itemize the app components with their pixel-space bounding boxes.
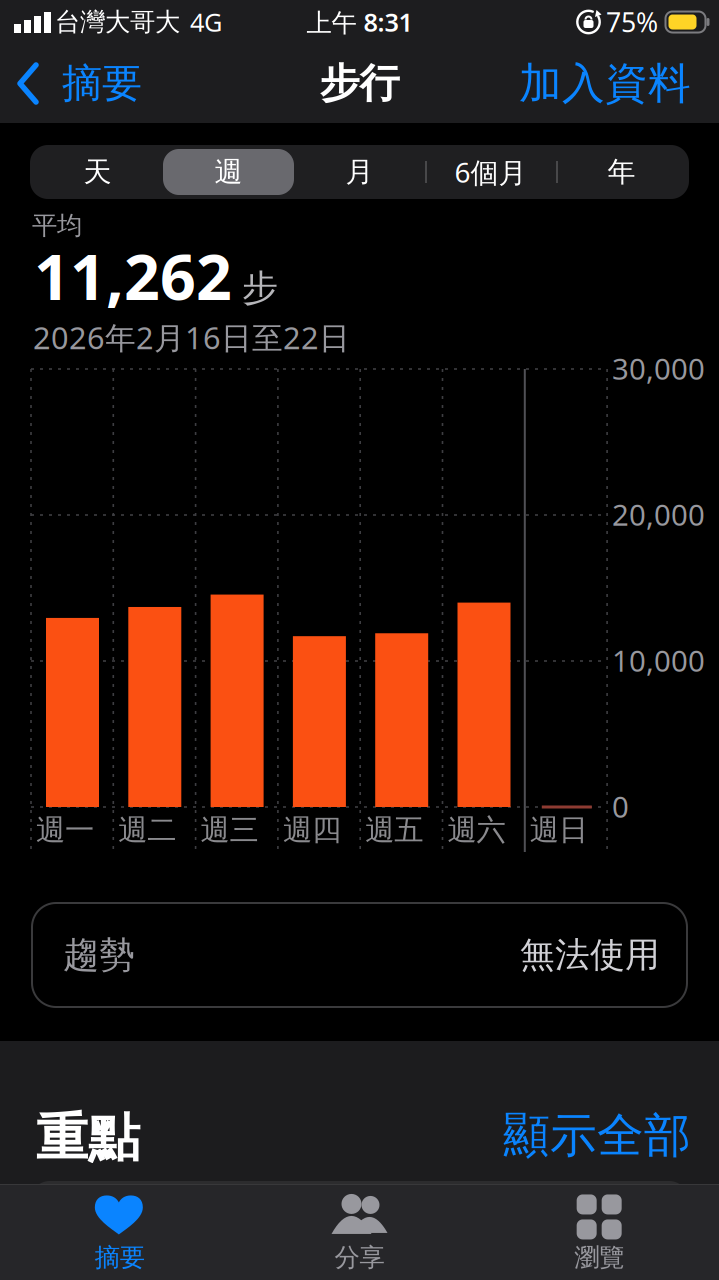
button[interactable]: 月 xyxy=(294,145,425,199)
staticText: 2026年2月16日至22日 xyxy=(33,317,350,358)
staticText: 摘要 xyxy=(62,59,142,108)
staticText: 週四 xyxy=(283,812,341,848)
staticText: 趨勢 xyxy=(63,933,135,977)
button[interactable]: 年 xyxy=(556,145,687,199)
staticText: 年 xyxy=(607,155,635,189)
staticText: 上午 8:31 xyxy=(306,5,412,39)
staticText: 20,000 xyxy=(612,495,705,534)
staticText: 週六 xyxy=(447,812,505,848)
staticText: 30,000 xyxy=(612,349,705,388)
staticText: 步行 xyxy=(319,59,399,108)
button[interactable]: 6個月 xyxy=(425,145,556,199)
button[interactable]: 瀏覽 xyxy=(479,1192,719,1276)
button[interactable]: 顯示全部 xyxy=(503,1107,691,1164)
staticText: 平均 xyxy=(32,210,82,241)
staticText: 瀏覽 xyxy=(574,1242,624,1273)
button[interactable]: 週 xyxy=(163,145,294,199)
button[interactable]: 天 xyxy=(32,145,163,199)
staticText: 4G xyxy=(190,5,222,39)
staticText: 週一 xyxy=(36,812,94,848)
staticText: 顯示全部 xyxy=(503,1107,691,1164)
staticText: 週二 xyxy=(118,812,176,848)
staticText: 步 xyxy=(242,266,278,310)
button[interactable]: 加入資料 xyxy=(519,57,719,110)
staticText: 週三 xyxy=(201,812,259,848)
staticText: 摘要 xyxy=(95,1242,145,1273)
staticText: 週日 xyxy=(530,812,588,848)
staticText: 6個月 xyxy=(454,153,526,191)
staticText: 75% xyxy=(606,4,658,40)
staticText: 10,000 xyxy=(612,641,705,680)
staticText: 11,262 xyxy=(34,234,232,317)
staticText: 無法使用 xyxy=(520,934,660,976)
button[interactable]: 返回摘要 xyxy=(0,59,142,108)
staticText: 天 xyxy=(83,155,111,189)
staticText: 週五 xyxy=(365,812,423,848)
staticText: 重點 xyxy=(36,1106,140,1170)
staticText: 0 xyxy=(612,787,629,826)
staticText: 台灣大哥大 xyxy=(55,6,180,37)
staticText: 加入資料 xyxy=(519,57,691,110)
button[interactable]: 摘要 xyxy=(0,1192,240,1276)
staticText: 週 xyxy=(214,155,242,189)
staticText: 分享 xyxy=(334,1242,384,1273)
staticText: 月 xyxy=(345,155,373,189)
button[interactable]: 分享 xyxy=(240,1192,479,1276)
